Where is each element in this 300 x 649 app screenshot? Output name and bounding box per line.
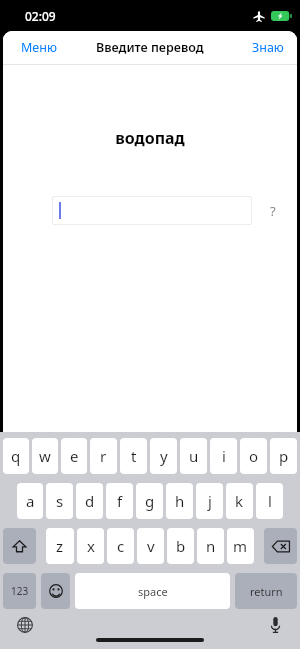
button[interactable]: z <box>46 528 74 564</box>
staticText: w <box>39 446 51 466</box>
staticText: h <box>175 491 185 511</box>
button[interactable]: Меню <box>3 32 75 63</box>
staticText: a <box>26 491 35 511</box>
button[interactable]: g <box>136 483 163 519</box>
button[interactable]: i <box>210 438 237 474</box>
button[interactable]: v <box>137 528 164 564</box>
staticText: r <box>100 446 107 466</box>
button[interactable]: a <box>17 483 43 519</box>
staticText: e <box>70 446 79 466</box>
button[interactable]: s <box>46 483 73 519</box>
staticText: z <box>56 536 64 556</box>
staticText: s <box>56 491 64 511</box>
button[interactable]: Знаю <box>239 32 297 63</box>
button[interactable]: l <box>256 483 283 519</box>
staticText: 123 <box>11 584 29 598</box>
staticText: space <box>138 584 168 599</box>
staticText: k <box>235 491 244 511</box>
staticText: 02:09 <box>25 8 56 24</box>
button[interactable]: q <box>3 438 29 474</box>
button[interactable]: Help <box>263 201 283 221</box>
button[interactable]: 123 <box>3 573 36 609</box>
button[interactable]: return <box>235 573 297 609</box>
staticText: y <box>160 446 168 466</box>
staticText: ? <box>270 202 276 220</box>
button[interactable]: b <box>167 528 194 564</box>
button[interactable] <box>52 196 252 225</box>
button[interactable]: Backspace <box>264 528 297 564</box>
staticText: return <box>250 584 283 599</box>
button[interactable]: y <box>150 438 177 474</box>
button[interactable]: Shift <box>3 528 36 564</box>
button[interactable]: c <box>107 528 134 564</box>
button[interactable]: h <box>166 483 193 519</box>
staticText: l <box>268 491 272 511</box>
button[interactable]: m <box>227 528 254 564</box>
button[interactable]: r <box>90 438 117 474</box>
staticText: g <box>145 491 155 511</box>
staticText: p <box>279 446 289 466</box>
staticText: i <box>222 446 226 466</box>
staticText: q <box>11 446 21 466</box>
staticText: n <box>206 536 216 556</box>
button[interactable]: k <box>226 483 253 519</box>
button[interactable]: space <box>75 573 230 609</box>
staticText: Знаю <box>252 39 284 56</box>
button[interactable]: d <box>76 483 103 519</box>
button[interactable]: u <box>180 438 207 474</box>
button[interactable]: Dictation <box>263 613 287 637</box>
staticText: d <box>85 491 95 511</box>
button[interactable]: o <box>240 438 267 474</box>
button[interactable]: j <box>196 483 223 519</box>
button[interactable]: x <box>77 528 104 564</box>
staticText: u <box>189 446 199 466</box>
button[interactable]: f <box>106 483 133 519</box>
staticText: t <box>131 446 137 466</box>
staticText: c <box>117 536 125 556</box>
button[interactable]: Emoji <box>41 573 70 609</box>
button[interactable]: Change keyboard language <box>13 613 37 637</box>
staticText: v <box>147 536 155 556</box>
button[interactable]: w <box>32 438 58 474</box>
staticText: Меню <box>21 39 57 56</box>
button[interactable]: t <box>120 438 147 474</box>
staticText: m <box>233 536 248 556</box>
staticText: f <box>117 491 123 511</box>
button[interactable]: e <box>61 438 87 474</box>
staticText: x <box>87 536 95 556</box>
button[interactable]: p <box>270 438 297 474</box>
button[interactable]: n <box>197 528 224 564</box>
staticText: j <box>208 491 212 511</box>
staticText: Введите перевод <box>96 39 204 56</box>
staticText: o <box>249 446 259 466</box>
staticText: b <box>176 536 186 556</box>
staticText: водопад <box>3 127 297 149</box>
